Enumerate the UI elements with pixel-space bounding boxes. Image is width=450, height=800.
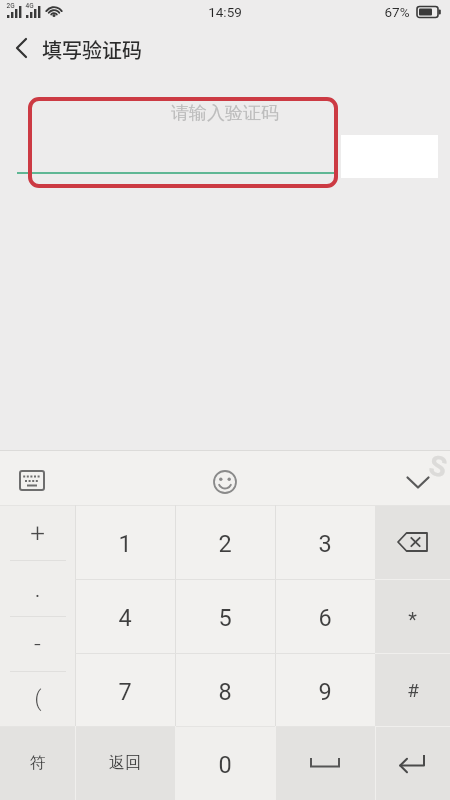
button[interactable]: 0 (175, 726, 275, 800)
button[interactable]: 返回 (75, 726, 175, 800)
button[interactable]: 7 (75, 653, 175, 727)
staticText: # (407, 679, 419, 701)
button[interactable]: * (375, 579, 450, 653)
button[interactable] (0, 26, 60, 70)
staticText: 67% (384, 4, 410, 20)
staticText: 1 (118, 530, 132, 558)
staticText: 2 (218, 530, 232, 558)
staticText: S (426, 448, 450, 484)
button[interactable]: - (0, 616, 75, 671)
staticText: * (408, 608, 417, 631)
button[interactable] (8, 458, 58, 502)
button[interactable]: # (375, 653, 450, 727)
staticText: 请输入验证码 (0, 102, 450, 125)
staticText: 符 (30, 753, 46, 773)
button[interactable]: + (0, 505, 75, 560)
staticText: 6 (318, 604, 332, 632)
button[interactable]: 8 (175, 653, 275, 727)
button[interactable]: 4 (75, 579, 175, 653)
staticText: 返回 (109, 753, 141, 773)
button[interactable] (375, 505, 450, 579)
staticText: + (30, 518, 45, 548)
staticText: 5 (218, 604, 232, 632)
staticText: - (34, 630, 41, 658)
staticText: 填写验证码 (42, 35, 142, 64)
button[interactable]: 6 (275, 579, 375, 653)
button[interactable]: . (0, 560, 75, 615)
button[interactable]: 1 (75, 505, 175, 579)
staticText: 8 (218, 678, 232, 706)
staticText: ( (34, 686, 42, 712)
staticText: 0 (218, 751, 232, 779)
button[interactable]: 2 (175, 505, 275, 579)
staticText: 7 (118, 678, 132, 706)
staticText: 3 (318, 530, 332, 558)
staticText: 4G (25, 2, 34, 10)
staticText: . (34, 573, 41, 603)
button[interactable]: 5 (175, 579, 275, 653)
staticText: 4 (118, 604, 132, 632)
staticText: 14:59 (0, 4, 450, 20)
staticText: 9 (318, 678, 332, 706)
button[interactable] (17, 98, 337, 176)
button[interactable]: 9 (275, 653, 375, 727)
button[interactable]: 符 (0, 726, 75, 800)
button[interactable] (275, 726, 375, 800)
button[interactable] (200, 460, 250, 504)
staticText: 2G (6, 2, 15, 10)
button[interactable]: ( (0, 671, 75, 726)
button[interactable] (394, 461, 442, 505)
button[interactable]: 3 (275, 505, 375, 579)
button[interactable] (375, 726, 450, 800)
